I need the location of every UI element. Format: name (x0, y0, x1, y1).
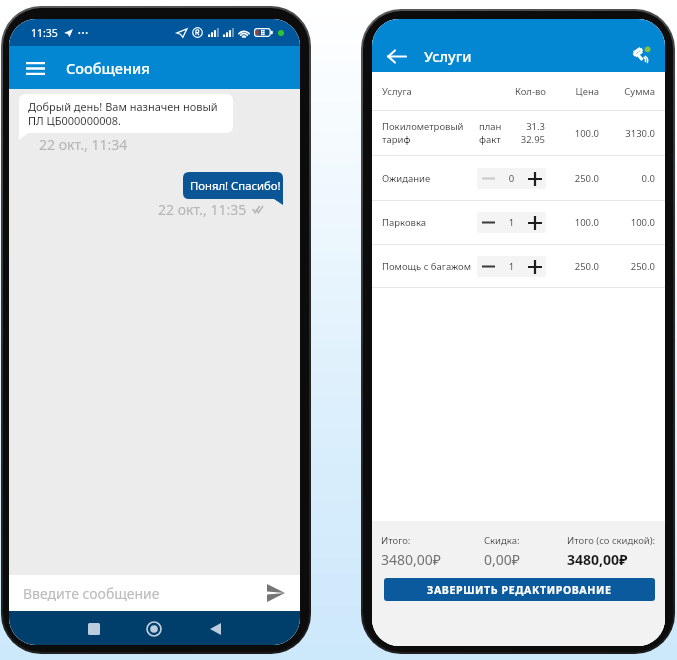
staticText: Покилометровый тариф (382, 120, 464, 146)
staticText: 100.0 (372, 216, 599, 229)
button[interactable]: ЗАВЕРШИТЬ РЕДАКТИРОВАНИЕ (384, 578, 655, 601)
button[interactable]: Increase (524, 168, 546, 189)
staticText: 22 окт., 11:35 (158, 200, 247, 219)
staticText: 0 (499, 172, 524, 185)
button[interactable]: Back (380, 40, 412, 72)
staticText: 31.3 32.95 (372, 120, 545, 146)
button[interactable]: Decrease (477, 256, 499, 277)
staticText: Сообщения (66, 58, 150, 78)
staticText: Скидка: (484, 534, 520, 547)
staticText: план факт (479, 120, 502, 146)
staticText: Добрый день! Вам назначен новый ПЛ ЦБ000… (28, 99, 218, 128)
staticText: ЗАВЕРШИТЬ РЕДАКТИРОВАНИЕ (427, 583, 612, 597)
staticText: 11:35 (31, 26, 58, 40)
staticText: Итого: (381, 534, 411, 547)
staticText: 100.0 (372, 216, 655, 229)
button[interactable]: Send (261, 578, 291, 608)
staticText: 3480,00₽ (381, 550, 441, 569)
staticText: Введите сообщение (23, 584, 261, 603)
staticText: 3480,00₽ (567, 550, 628, 569)
staticText: 1 (499, 216, 524, 229)
staticText: Помощь с багажом (382, 260, 472, 273)
staticText: 100.0 (372, 127, 599, 140)
staticText: 1 (499, 260, 524, 273)
staticText: Ожидание (382, 172, 431, 185)
button[interactable]: Decrease (477, 212, 499, 233)
staticText: Цена (372, 85, 599, 98)
staticText: 0.0 (372, 172, 655, 185)
staticText: Услуга (382, 85, 412, 98)
staticText: 0,00₽ (484, 550, 520, 569)
staticText: Понял! Спасибо! (190, 178, 281, 193)
staticText: Кол-во (372, 85, 546, 98)
button[interactable]: Menu (19, 52, 51, 84)
button[interactable]: Home (139, 612, 169, 645)
button[interactable]: Navigation (625, 40, 657, 72)
button[interactable]: Increase (524, 256, 546, 277)
staticText: Парковка (382, 216, 427, 229)
button[interactable]: Back (200, 612, 230, 645)
staticText: 3130.0 (372, 127, 655, 140)
button[interactable]: Decrease (477, 168, 499, 189)
button[interactable]: Increase (524, 212, 546, 233)
staticText: 250.0 (372, 260, 599, 273)
button[interactable]: Recent apps (79, 612, 109, 645)
staticText: 250.0 (372, 172, 599, 185)
staticText: 22 окт., 11:34 (39, 135, 128, 154)
staticText: Услуги (424, 46, 472, 66)
staticText: 250.0 (372, 260, 655, 273)
staticText: Итого (со скидкой): (567, 534, 656, 547)
staticText: Сумма (372, 85, 655, 98)
